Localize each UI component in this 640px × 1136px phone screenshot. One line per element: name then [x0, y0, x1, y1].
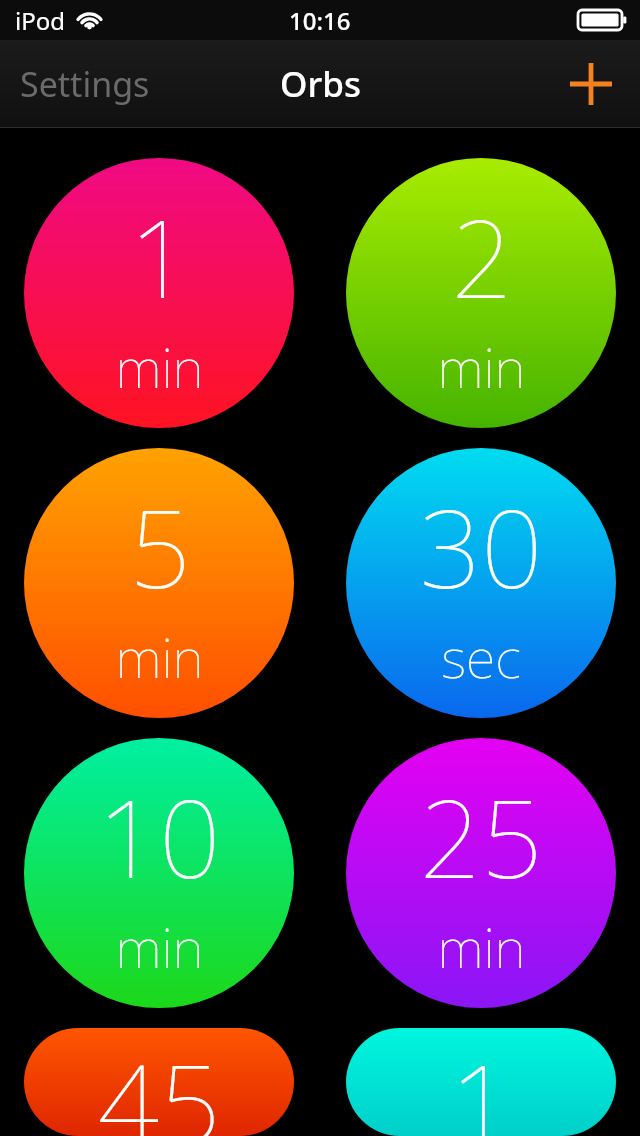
staticText: sec	[441, 620, 521, 694]
staticText: Orbs	[280, 60, 361, 108]
button[interactable]: 45	[24, 1028, 294, 1136]
staticText: min	[437, 910, 526, 984]
staticText: min	[115, 330, 204, 404]
button[interactable]: 1	[346, 1028, 616, 1136]
staticText: 25	[419, 763, 543, 910]
button[interactable]: 30	[346, 448, 616, 718]
staticText: 45	[97, 1028, 221, 1136]
button[interactable]: 5	[24, 448, 294, 718]
staticText: 1	[450, 1028, 512, 1136]
staticText: iPod	[15, 4, 65, 37]
staticText: Settings	[20, 61, 150, 107]
button[interactable]: Settings	[0, 47, 170, 121]
staticText: 1	[129, 183, 191, 330]
staticText: 10:16	[289, 4, 351, 37]
button[interactable]: 10	[24, 738, 294, 1008]
button[interactable]: 25	[346, 738, 616, 1008]
staticText: min	[437, 330, 526, 404]
staticText: 5	[129, 473, 191, 620]
staticText: 30	[419, 473, 543, 620]
staticText: 2	[451, 183, 513, 330]
button[interactable]: 2	[346, 158, 616, 428]
staticText: 10	[97, 763, 221, 910]
button[interactable]: 1	[24, 158, 294, 428]
button[interactable]: Add timer	[561, 54, 621, 114]
staticText: min	[115, 910, 204, 984]
staticText: min	[115, 620, 204, 694]
